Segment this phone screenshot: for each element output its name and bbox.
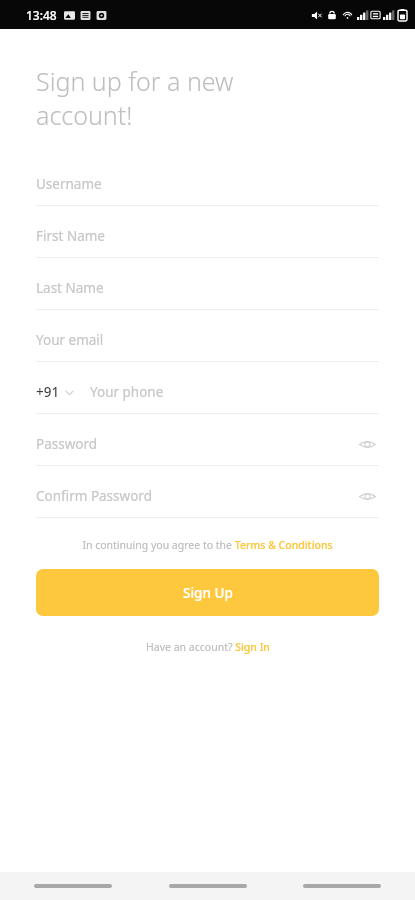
- button[interactable]: Password: [0, 423, 415, 475]
- staticText: Have an account? Sign In: [146, 640, 270, 654]
- staticText: Username: [36, 175, 102, 193]
- button[interactable]: In continuing you agree to the Terms & C…: [0, 535, 415, 555]
- button[interactable]: Sign Up: [36, 569, 379, 616]
- button[interactable]: Have an account? Sign In: [0, 637, 415, 657]
- staticText: Sign up for a new account!: [36, 64, 234, 132]
- staticText: +91: [36, 383, 60, 401]
- button[interactable]: Show password: [355, 432, 379, 456]
- button[interactable]: First Name: [0, 215, 415, 267]
- staticText: First Name: [36, 227, 105, 245]
- button[interactable]: Navigation button: [303, 877, 381, 895]
- button[interactable]: Username: [0, 163, 415, 215]
- staticText: Your email: [36, 331, 104, 349]
- button[interactable]: Show password: [355, 484, 379, 508]
- button[interactable]: Navigation button: [169, 877, 247, 895]
- button[interactable]: Your phone: [90, 383, 164, 401]
- button[interactable]: Confirm Password: [0, 475, 415, 527]
- staticText: Your phone: [90, 383, 164, 401]
- staticText: Password: [36, 435, 98, 453]
- staticText: Last Name: [36, 279, 104, 297]
- staticText: 13:48: [26, 7, 57, 23]
- button[interactable]: Your email: [0, 319, 415, 371]
- button[interactable]: +91: [36, 383, 76, 401]
- staticText: Confirm Password: [36, 487, 152, 505]
- staticText: In continuing you agree to the Terms & C…: [82, 538, 333, 552]
- staticText: Sign Up: [183, 584, 233, 602]
- button[interactable]: Navigation button: [34, 877, 112, 895]
- button[interactable]: Last Name: [0, 267, 415, 319]
